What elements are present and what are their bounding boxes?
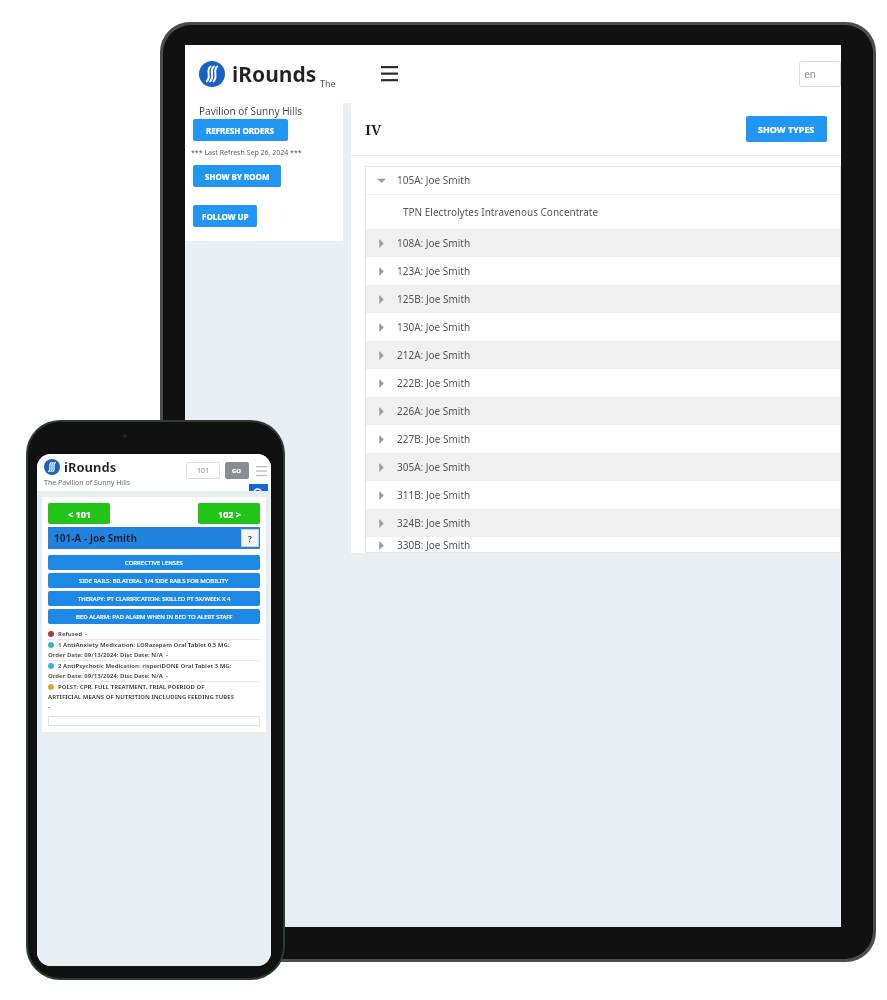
staticText: 108A: Joe Smith xyxy=(397,236,471,250)
staticText: 305A: Joe Smith xyxy=(397,460,471,474)
staticText: TPN Electrolytes Intravenous Concentrate xyxy=(403,205,599,219)
button[interactable]: 130A: Joe Smith xyxy=(365,313,841,341)
button[interactable]: 305A: Joe Smith xyxy=(365,453,841,481)
staticText: SHOW TYPES xyxy=(758,123,815,135)
staticText: 105A: Joe Smith xyxy=(397,173,471,187)
staticText: iRounds xyxy=(232,60,317,89)
staticText: Order Date: 09/13/2024: Disc Date: N/A - xyxy=(48,651,260,659)
staticText: 227B: Joe Smith xyxy=(397,432,471,446)
button[interactable]: 101-A - Joe Smith xyxy=(48,527,260,549)
button[interactable]: Menu xyxy=(374,59,404,89)
staticText: 101 xyxy=(197,466,210,476)
button[interactable]: SHOW BY ROOM xyxy=(193,165,281,187)
button[interactable]: 212A: Joe Smith xyxy=(365,341,841,369)
button[interactable]: 227B: Joe Smith xyxy=(365,425,841,453)
button[interactable]: REFRESH ORDERS xyxy=(193,119,288,141)
staticText: BED ALARM: PAD ALARM WHEN IN BED TO ALER… xyxy=(76,613,233,621)
button[interactable]: GO xyxy=(225,462,249,479)
staticText: en xyxy=(799,67,817,81)
staticText: 125B: Joe Smith xyxy=(397,292,471,306)
staticText: GO xyxy=(232,467,242,475)
staticText: SHOW BY ROOM xyxy=(205,171,270,182)
staticText: The Pavilion of Sunny Hills xyxy=(44,478,131,488)
staticText: 101-A - Joe Smith xyxy=(54,531,137,545)
staticText: 2 AntiPsychotic Medication: risperiDONE … xyxy=(58,662,232,670)
button[interactable]: FOLLOW UP xyxy=(193,205,257,227)
staticText: 226A: Joe Smith xyxy=(397,404,471,418)
staticText: POLST: CPR, FULL TREATMENT, TRIAL POERIO… xyxy=(58,683,205,691)
staticText: 330B: Joe Smith xyxy=(397,538,471,552)
button[interactable]: 105A: Joe Smith xyxy=(365,166,841,194)
staticText: Refused - xyxy=(58,630,88,638)
button[interactable]: 324B: Joe Smith xyxy=(365,509,841,537)
button[interactable]: BED ALARM: PAD ALARM WHEN IN BED TO ALER… xyxy=(48,609,260,624)
staticText: The xyxy=(320,77,336,89)
staticText: 311B: Joe Smith xyxy=(397,488,471,502)
button[interactable]: 108A: Joe Smith xyxy=(365,229,841,257)
staticText: Pavilion of Sunny Hills xyxy=(199,104,303,118)
staticText: 102 > xyxy=(218,508,241,520)
staticText: 212A: Joe Smith xyxy=(397,348,471,362)
staticText: Order Date: 09/13/2024: Disc Date: N/A - xyxy=(48,672,260,680)
button[interactable]: CORRECTIVE LENSES xyxy=(48,555,260,570)
staticText: REFRESH ORDERS xyxy=(206,125,275,136)
button[interactable]: 330B: Joe Smith xyxy=(365,537,841,553)
staticText: 222B: Joe Smith xyxy=(397,376,471,390)
staticText: IV xyxy=(365,119,382,139)
staticText: 123A: Joe Smith xyxy=(397,264,471,278)
button[interactable]: Menu xyxy=(254,464,268,478)
button[interactable]: Search xyxy=(249,484,268,503)
staticText: 324B: Joe Smith xyxy=(397,516,471,530)
button[interactable]: 123A: Joe Smith xyxy=(365,257,841,285)
button[interactable]: SIDE RAILS: BILATERAL 1/4 SIDE RAILS FOR… xyxy=(48,573,260,588)
staticText: iRounds xyxy=(64,458,117,476)
staticText: THERAPY: PT CLARIFICATION: SKILLED PT 5X… xyxy=(78,595,231,603)
button[interactable]: THERAPY: PT CLARIFICATION: SKILLED PT 5X… xyxy=(48,591,260,606)
staticText: CORRECTIVE LENSES xyxy=(125,559,183,567)
button[interactable]: 125B: Joe Smith xyxy=(365,285,841,313)
button[interactable]: 222B: Joe Smith xyxy=(365,369,841,397)
staticText: ARTIFICIAL MEANS OF NUTRITION INCLUDING … xyxy=(48,693,260,701)
staticText: FOLLOW UP xyxy=(202,211,249,222)
button[interactable]: 226A: Joe Smith xyxy=(365,397,841,425)
staticText: 1 AntiAnxiety Medication: LORazepam Oral… xyxy=(58,641,230,649)
staticText: - xyxy=(48,703,260,711)
staticText: ? xyxy=(248,533,252,544)
staticText: 130A: Joe Smith xyxy=(397,320,471,334)
button[interactable]: 102 > xyxy=(198,503,260,524)
button[interactable]: 311B: Joe Smith xyxy=(365,481,841,509)
staticText: < 101 xyxy=(68,508,91,520)
button[interactable]: ? xyxy=(241,529,259,547)
button[interactable]: < 101 xyxy=(48,503,110,524)
staticText: *** Last Refresh Sep 26, 2024 *** xyxy=(191,148,302,158)
button[interactable]: 101 xyxy=(186,462,220,479)
staticText: SIDE RAILS: BILATERAL 1/4 SIDE RAILS FOR… xyxy=(79,577,229,585)
button[interactable]: SHOW TYPES xyxy=(746,116,827,142)
button[interactable]: en xyxy=(799,61,841,87)
